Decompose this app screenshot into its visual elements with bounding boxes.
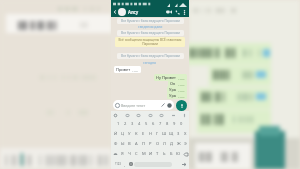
button[interactable]: Э <box>182 139 189 149</box>
button[interactable]: Sticker <box>148 113 153 118</box>
button[interactable]: Ц <box>119 129 126 139</box>
staticText: У <box>128 131 131 137</box>
button[interactable]: 4 <box>136 119 143 129</box>
button[interactable]: More options <box>182 10 187 15</box>
button[interactable]: Enter <box>180 159 188 169</box>
staticText: 0 <box>180 121 183 127</box>
staticText: Б <box>170 151 173 157</box>
staticText: 17:02 <box>178 95 185 98</box>
button[interactable]: Menu <box>182 113 187 118</box>
button[interactable]: Ш <box>161 129 168 139</box>
button[interactable]: 6 <box>150 119 157 129</box>
button[interactable]: Search <box>113 113 118 118</box>
staticText: Я <box>121 151 124 157</box>
staticText: сведения дали <box>138 24 163 29</box>
button[interactable]: 2 <box>122 119 129 129</box>
staticText: Э <box>184 141 187 147</box>
staticText: Г <box>156 131 159 137</box>
staticText: Т <box>156 151 159 157</box>
button[interactable]: 5 <box>143 119 150 129</box>
staticText: Л <box>163 141 166 147</box>
staticText: 3 <box>131 121 134 127</box>
button[interactable]: Ч <box>126 149 133 159</box>
button[interactable]: Ь <box>161 149 168 159</box>
button[interactable]: Language <box>127 159 134 169</box>
button[interactable]: В <box>126 139 133 149</box>
button[interactable]: Е <box>140 129 147 139</box>
staticText: 17:02 <box>178 89 185 92</box>
button[interactable]: Г <box>154 129 161 139</box>
staticText: Ну Привет <box>156 75 176 80</box>
button[interactable]: ?123 <box>113 159 122 169</box>
staticText: Ц <box>121 131 125 137</box>
button[interactable]: У <box>126 129 133 139</box>
staticText: Н <box>149 131 153 137</box>
button[interactable]: Video call <box>165 8 173 16</box>
button[interactable]: 8 <box>164 119 171 129</box>
button[interactable]: GIF <box>136 113 141 118</box>
button[interactable]: Settings <box>159 113 164 118</box>
button[interactable]: Л <box>161 139 168 149</box>
button[interactable]: А <box>133 139 140 149</box>
staticText: А <box>135 141 138 147</box>
button[interactable]: Б <box>168 149 175 159</box>
staticText: В <box>128 141 131 147</box>
button[interactable]: 3 <box>129 119 136 129</box>
button[interactable]: Clipboard <box>125 113 130 118</box>
button[interactable]: Т <box>154 149 161 159</box>
button[interactable]: С <box>133 149 140 159</box>
button[interactable]: Call <box>174 9 181 16</box>
button[interactable]: Backspace <box>182 149 189 159</box>
staticText: Ш <box>162 131 167 137</box>
button[interactable]: Shift <box>112 149 119 159</box>
staticText: Щ <box>169 131 174 137</box>
staticText: П <box>142 141 146 147</box>
staticText: 1 <box>117 121 120 127</box>
button[interactable]: И <box>147 149 154 159</box>
button[interactable]: Я <box>119 149 126 159</box>
button[interactable]: Д <box>168 139 175 149</box>
button[interactable]: К <box>133 129 140 139</box>
button[interactable]: Щ <box>168 129 175 139</box>
staticText: Ю <box>176 151 181 157</box>
button[interactable]: Р <box>147 139 154 149</box>
staticText: Алсу <box>128 9 139 15</box>
staticText: Х <box>184 131 187 137</box>
button[interactable]: Ы <box>119 139 126 149</box>
staticText: Введите текст <box>121 103 146 108</box>
button[interactable]: М <box>140 149 147 159</box>
staticText: О <box>156 141 160 147</box>
button[interactable]: Minimize <box>171 113 176 118</box>
button[interactable]: 1 <box>115 119 122 129</box>
button[interactable]: Ф <box>112 139 119 149</box>
button[interactable]: П <box>140 139 147 149</box>
staticText: ?123 <box>115 162 121 166</box>
staticText: Всё сообщения защищены ВСЁ сквозным Паро… <box>117 38 183 46</box>
button[interactable]: Ю <box>175 149 182 159</box>
button[interactable]: 0 <box>178 119 185 129</box>
button[interactable]: Back <box>112 9 118 15</box>
staticText: 7 <box>159 121 162 127</box>
button[interactable]: , <box>122 159 127 169</box>
button[interactable]: О <box>154 139 161 149</box>
button[interactable]: 9 <box>171 119 178 129</box>
staticText: 9 <box>173 121 176 127</box>
button[interactable]: Й <box>112 129 119 139</box>
button[interactable]: Х <box>182 129 189 139</box>
staticText: , <box>124 162 125 167</box>
button[interactable]: 7 <box>157 119 164 129</box>
staticText: З <box>177 131 180 137</box>
staticText: Ы <box>121 141 125 147</box>
staticText: К <box>135 131 138 137</box>
staticText: Все бумаги с базы ведущего Паролями <box>119 54 182 58</box>
button[interactable]: Ж <box>175 139 182 149</box>
staticText: Е <box>142 131 145 137</box>
button[interactable]: Voice message <box>176 100 187 111</box>
button[interactable]: Н <box>147 129 154 139</box>
staticText: 5 <box>145 121 148 127</box>
staticText: 6 <box>152 121 155 127</box>
button[interactable]: З <box>175 129 182 139</box>
staticText: Ура <box>169 87 176 92</box>
button[interactable]: Введите текст <box>113 100 174 110</box>
